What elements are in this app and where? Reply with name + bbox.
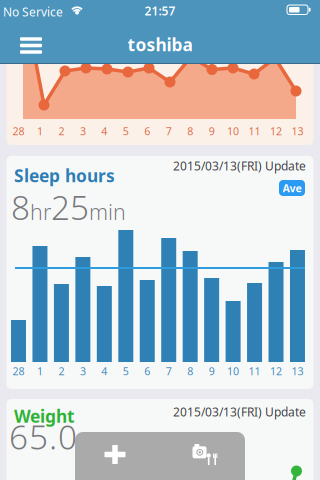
staticText: 7	[166, 124, 172, 138]
staticText: 12	[270, 364, 282, 378]
staticText: Ave	[282, 181, 301, 195]
staticText: 5	[123, 124, 129, 138]
staticText: 65.0	[9, 414, 77, 459]
staticText: 9	[209, 124, 215, 138]
staticText: 8	[187, 124, 193, 138]
staticText: 2015/03/13(FRI) Update	[173, 404, 306, 420]
staticText: 12	[270, 124, 282, 138]
staticText: 21:57	[144, 3, 175, 19]
staticText: 13	[291, 364, 303, 378]
staticText: 1	[37, 124, 43, 138]
staticText: 4	[101, 124, 107, 138]
staticText: No Service	[3, 4, 63, 20]
staticText: 10	[227, 124, 239, 138]
button[interactable]: Menu	[9, 23, 53, 67]
staticText: 28	[12, 124, 24, 138]
staticText: 2	[58, 364, 64, 378]
staticText: Weight	[14, 404, 75, 427]
button[interactable]: Add entry	[85, 430, 145, 478]
staticText: 8hr25min	[11, 185, 126, 229]
staticText: 28	[12, 364, 24, 378]
staticText: 1	[37, 364, 43, 378]
staticText: 6	[144, 364, 150, 378]
staticText: 4	[101, 364, 107, 378]
staticText: 8	[187, 364, 193, 378]
staticText: 5	[123, 364, 129, 378]
staticText: 3	[80, 364, 86, 378]
staticText: 13	[291, 124, 303, 138]
staticText: 3	[80, 124, 86, 138]
staticText: 7	[166, 364, 172, 378]
button[interactable]: Ave	[279, 180, 305, 196]
staticText: 10	[227, 364, 239, 378]
staticText: 2015/03/13(FRI) Update	[173, 158, 306, 174]
staticText: 6	[144, 124, 150, 138]
staticText: 2	[58, 124, 64, 138]
staticText: Sleep hours	[14, 164, 115, 187]
staticText: toshiba	[127, 33, 192, 56]
staticText: 9	[209, 364, 215, 378]
button[interactable]: Photograph meal	[174, 430, 234, 478]
staticText: 11	[249, 364, 261, 378]
staticText: 11	[249, 124, 261, 138]
